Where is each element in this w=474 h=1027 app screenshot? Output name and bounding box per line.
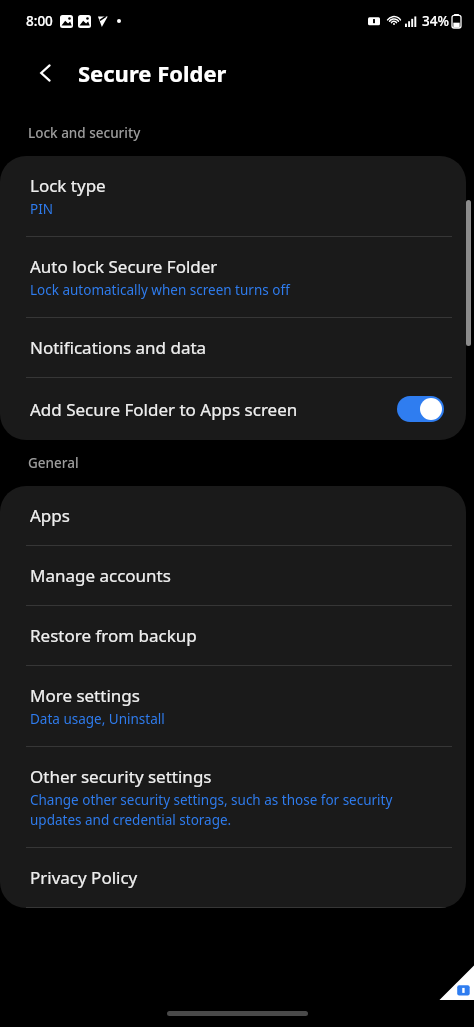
button[interactable]: Restore from backup [0,606,466,666]
staticText: Secure Folder [78,58,227,88]
button[interactable]: Add Secure Folder to Apps screen [0,378,466,440]
staticText: Lock and security [28,124,141,142]
staticText: 8:00 [26,12,53,30]
staticText: More settings [30,684,140,707]
staticText: Apps [30,504,70,527]
staticText: Data usage, Uninstall [30,710,165,728]
button[interactable]: Lock type [0,156,466,237]
staticText: Restore from backup [30,624,197,647]
staticText: Other security settings [30,765,212,788]
button[interactable]: Other security settings [0,747,466,848]
staticText: PIN [30,200,54,218]
staticText: Lock type [30,174,106,197]
button[interactable]: Auto lock Secure Folder [0,237,466,318]
staticText: 34% [422,12,449,30]
staticText: Notifications and data [30,336,207,359]
staticText: Add Secure Folder to Apps screen [30,398,298,421]
button[interactable]: Apps [0,486,466,546]
button[interactable]: Notifications and data [0,318,466,378]
staticText: Auto lock Secure Folder [30,255,218,278]
button[interactable] [397,396,444,422]
staticText: Lock automatically when screen turns off [30,281,290,299]
staticText: General [28,454,79,472]
staticText: Privacy Policy [30,866,138,889]
staticText: Change other security settings, such as … [30,791,444,829]
button[interactable]: Back [26,53,66,93]
button[interactable]: Privacy Policy [0,848,466,908]
staticText: Manage accounts [30,564,171,587]
button[interactable]: Manage accounts [0,546,466,606]
button[interactable]: More settings [0,666,466,747]
